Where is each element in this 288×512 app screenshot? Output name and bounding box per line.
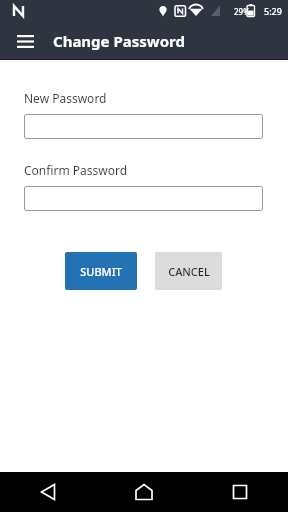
button[interactable]: Open navigation menu: [10, 26, 40, 56]
staticText: Change Password: [53, 31, 185, 51]
button[interactable]: Home: [96, 472, 192, 512]
staticText: CANCEL: [168, 264, 210, 279]
button[interactable]: SUBMIT: [65, 252, 137, 290]
staticText: New Password: [24, 90, 107, 106]
staticText: 5:29: [264, 5, 282, 17]
button[interactable]: [24, 114, 263, 139]
staticText: Confirm Password: [24, 162, 128, 178]
button[interactable]: Back: [0, 472, 96, 512]
button[interactable]: [24, 186, 263, 211]
staticText: 29%: [234, 6, 250, 17]
staticText: SUBMIT: [80, 264, 122, 279]
button[interactable]: Recent apps: [192, 472, 288, 512]
button[interactable]: CANCEL: [155, 252, 222, 290]
